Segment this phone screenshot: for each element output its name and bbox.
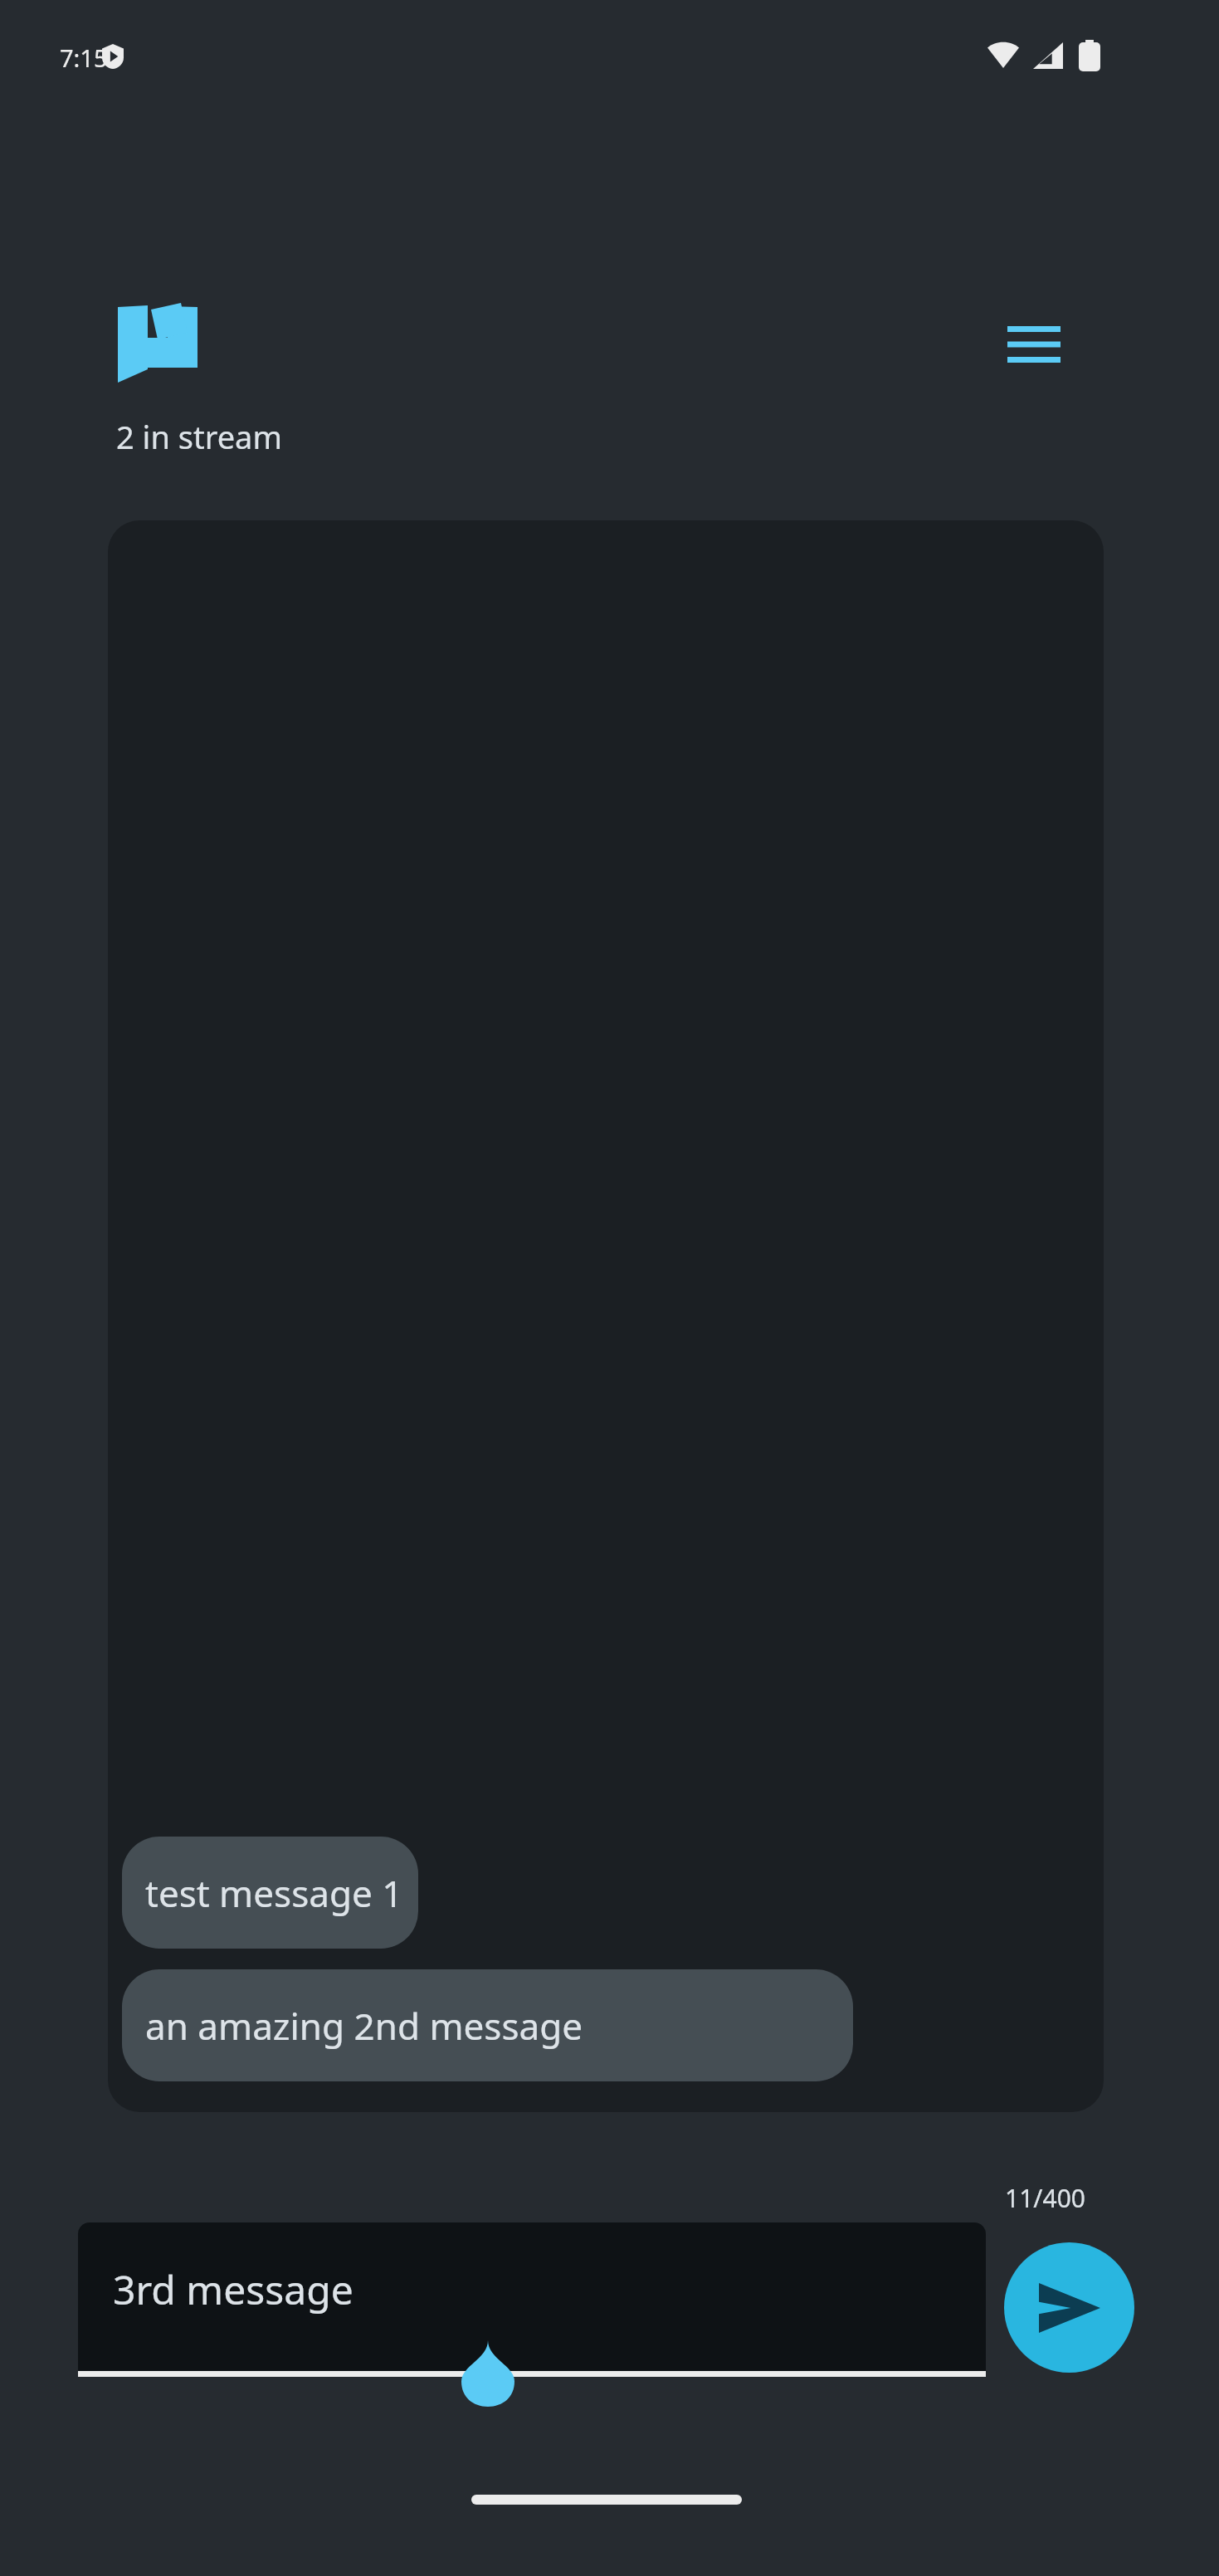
button[interactable]: Menu [992, 307, 1075, 382]
button[interactable]: App logo [116, 303, 199, 386]
button[interactable]: an amazing 2nd message [122, 1969, 853, 2081]
staticText: 7:15 [60, 41, 108, 74]
button[interactable]: test message 1 [122, 1837, 418, 1949]
staticText: 11/400 [1005, 2181, 1085, 2215]
staticText: test message 1 [145, 1868, 403, 1918]
staticText: 2 in stream [116, 415, 282, 458]
button[interactable]: 3rd message [78, 2222, 986, 2376]
staticText: an amazing 2nd message [145, 2001, 583, 2051]
staticText: 3rd message [113, 2262, 354, 2316]
button[interactable]: Send [1004, 2242, 1134, 2373]
